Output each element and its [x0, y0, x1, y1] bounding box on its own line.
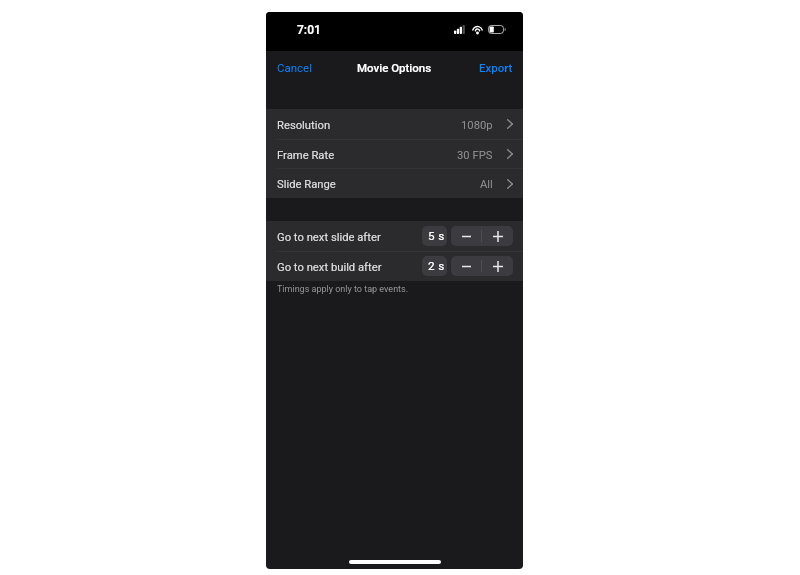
button[interactable]: Increase [482, 226, 513, 246]
button[interactable]: Cancel [272, 55, 318, 80]
button[interactable]: Go to next build after value 2 s [422, 256, 447, 276]
button[interactable]: Decrease [451, 256, 481, 276]
staticText: Movie Options [357, 61, 432, 74]
staticText: 30 FPS [457, 149, 493, 162]
button[interactable]: Go to next slide after value 5 s [422, 226, 447, 246]
staticText: Export [479, 61, 513, 74]
staticText: 7:01 [297, 23, 321, 37]
staticText: 2 s [428, 259, 445, 273]
button[interactable]: Increase [482, 256, 513, 276]
staticText: Slide Range [277, 178, 336, 191]
staticText: Cancel [277, 61, 313, 74]
button[interactable]: Resolution [266, 109, 523, 139]
staticText: Go to next build after [277, 261, 382, 274]
staticText: Resolution [277, 119, 331, 132]
staticText: 1080p [461, 119, 493, 132]
button[interactable]: Export [474, 55, 518, 80]
button[interactable]: Slide Range [266, 169, 523, 198]
button[interactable]: Frame Rate [266, 139, 523, 169]
staticText: 5 s [428, 229, 445, 243]
button[interactable]: Decrease [451, 226, 481, 246]
staticText: Frame Rate [277, 149, 335, 162]
staticText: All [480, 178, 493, 191]
staticText: Go to next slide after [277, 231, 381, 244]
staticText: Timings apply only to tap events. [277, 284, 409, 295]
